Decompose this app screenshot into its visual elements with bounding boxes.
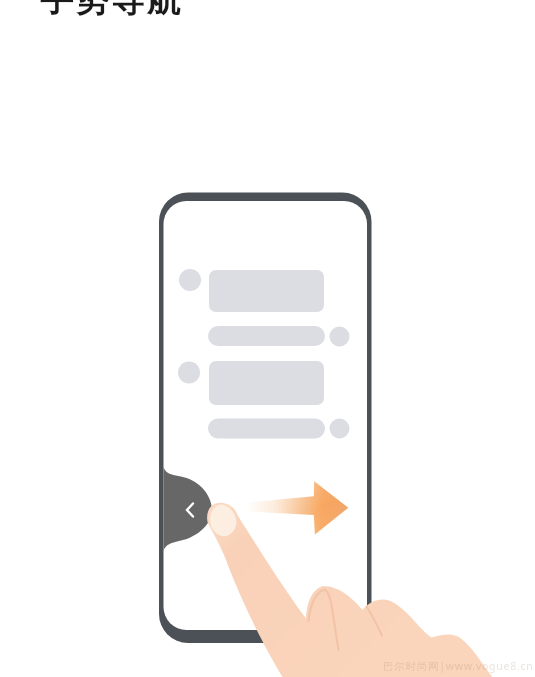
button[interactable]: Back gesture: [159, 466, 213, 552]
button[interactable]: 手势导航: [40, 0, 183, 21]
staticText: 巴尔时尚网|www.vogue8.cn: [383, 659, 534, 673]
